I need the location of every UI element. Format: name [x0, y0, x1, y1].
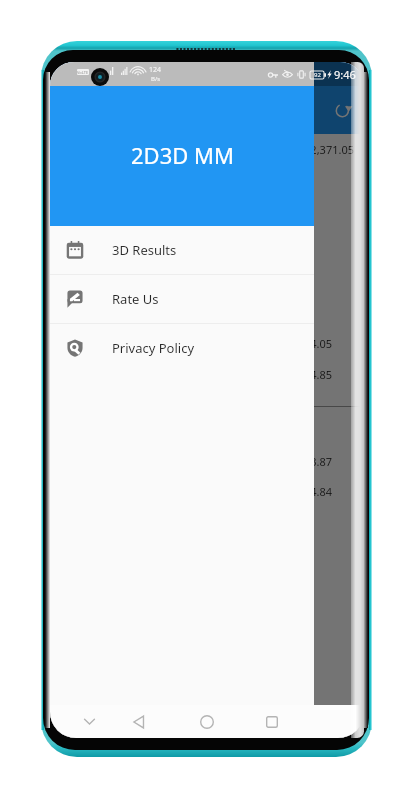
staticText: B/s [151, 75, 161, 83]
staticText: 1,253.87 [272, 454, 332, 469]
staticText: 1,234.05 [272, 336, 332, 351]
button[interactable]: Rate Us [50, 275, 314, 323]
staticText: 3D 17-09-2023 [66, 336, 144, 351]
staticText: 2,371.05 [294, 142, 354, 157]
button[interactable]: Recents [256, 705, 288, 738]
staticText: 2D3D MM [131, 140, 234, 170]
staticText: 124 [149, 65, 162, 75]
button[interactable]: Privacy Policy [50, 324, 314, 372]
button[interactable]: 3D Results [50, 226, 314, 274]
staticText: 9:46 [334, 67, 356, 82]
staticText: VoLTE [77, 70, 89, 75]
staticText: Rate Us [112, 290, 159, 308]
staticText: Total balance [66, 142, 135, 157]
staticText: 1,234.85 [272, 367, 332, 382]
staticText: Privacy Policy [112, 339, 195, 357]
button[interactable]: Refresh [327, 94, 359, 126]
staticText: 92 [314, 71, 321, 79]
button[interactable]: Back [123, 705, 155, 738]
staticText: 1,564.84 [272, 484, 332, 499]
button[interactable]: Home [191, 705, 223, 738]
staticText: 3D Results [112, 241, 177, 259]
button[interactable]: Hide keyboard [73, 705, 105, 738]
